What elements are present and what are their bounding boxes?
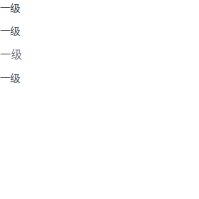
staticText: 一级 — [0, 23, 20, 38]
staticText: 一级 — [0, 0, 20, 15]
staticText: 一级 — [0, 70, 20, 85]
staticText: 一级 — [0, 46, 22, 62]
